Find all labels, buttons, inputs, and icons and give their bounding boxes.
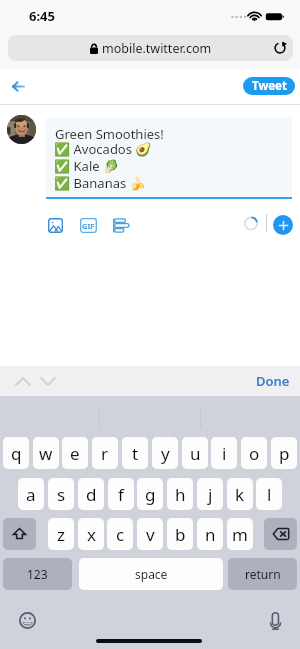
button[interactable]: p — [271, 437, 297, 469]
button[interactable]: s — [48, 478, 74, 510]
button[interactable]: mobile.twitter.com — [8, 35, 293, 61]
button[interactable]: j — [197, 478, 223, 510]
button[interactable]: return — [228, 558, 297, 590]
staticText: f — [118, 483, 124, 506]
staticText: w — [39, 442, 53, 465]
staticText: GIF — [82, 221, 95, 231]
staticText: c — [116, 523, 125, 546]
button[interactable]: r — [92, 437, 118, 469]
staticText: o — [249, 442, 260, 465]
staticText: b — [175, 523, 186, 546]
staticText: p — [279, 442, 290, 465]
staticText: ✅ Avocados 🥑 — [54, 140, 152, 158]
button[interactable]: Previous field — [11, 369, 35, 393]
button[interactable]: a — [18, 478, 44, 510]
button[interactable]: q — [3, 437, 29, 469]
staticText: r — [101, 442, 109, 465]
button[interactable]: v — [137, 518, 163, 550]
button[interactable]: Done — [254, 366, 292, 396]
button[interactable]: 123 — [3, 558, 72, 590]
staticText: j — [208, 483, 213, 506]
staticText: u — [190, 442, 201, 465]
button[interactable]: k — [227, 478, 253, 510]
button[interactable]: Add photo — [42, 212, 68, 238]
staticText: d — [86, 483, 97, 506]
staticText: v — [146, 523, 155, 546]
button[interactable]: h — [167, 478, 193, 510]
staticText: ✅ Bananas 🍌 — [54, 174, 146, 192]
button[interactable]: c — [107, 518, 133, 550]
button[interactable]: g — [137, 478, 163, 510]
button[interactable]: f — [108, 478, 134, 510]
button[interactable]: Back — [4, 72, 32, 100]
staticText: t — [132, 442, 139, 465]
button[interactable]: x — [78, 518, 104, 550]
button[interactable]: Reload page — [267, 35, 293, 61]
button[interactable]: Add poll — [108, 212, 134, 238]
staticText: ✅ Kale 🥬 — [54, 157, 120, 175]
staticText: Green Smoothies! — [55, 125, 164, 143]
button[interactable]: space — [79, 558, 223, 590]
staticText: g — [145, 483, 156, 506]
staticText: Done — [256, 372, 290, 390]
staticText: return — [245, 566, 281, 582]
button[interactable]: l — [256, 478, 282, 510]
staticText: mobile.twitter.com — [102, 40, 212, 57]
staticText: e — [70, 442, 80, 465]
button[interactable]: Add tweet to thread — [273, 215, 293, 235]
button[interactable]: d — [78, 478, 104, 510]
staticText: y — [161, 442, 170, 465]
button[interactable]: n — [197, 518, 223, 550]
button[interactable]: t — [122, 437, 148, 469]
button[interactable]: Add GIF — [75, 212, 101, 238]
staticText: 123 — [27, 566, 48, 582]
staticText: a — [26, 483, 36, 506]
button[interactable]: Emoji keyboard — [19, 612, 36, 629]
button[interactable]: z — [48, 518, 74, 550]
button[interactable]: u — [182, 437, 208, 469]
staticText: h — [175, 483, 186, 506]
staticText: k — [235, 483, 245, 506]
button[interactable]: Next field — [36, 369, 60, 393]
button[interactable]: Dictation — [270, 612, 281, 630]
staticText: Tweet — [252, 78, 287, 94]
staticText: m — [232, 523, 248, 546]
button[interactable]: e — [62, 437, 88, 469]
staticText: s — [57, 483, 66, 506]
staticText: i — [222, 442, 227, 465]
button[interactable]: Backspace — [264, 518, 297, 550]
staticText: z — [57, 523, 65, 546]
button[interactable]: Tweet — [243, 77, 295, 95]
staticText: space — [135, 566, 168, 582]
button[interactable]: w — [33, 437, 59, 469]
button[interactable]: m — [227, 518, 253, 550]
staticText: x — [87, 523, 96, 546]
staticText: q — [11, 442, 22, 465]
button[interactable]: y — [152, 437, 178, 469]
button[interactable]: i — [211, 437, 237, 469]
staticText: n — [205, 523, 216, 546]
button[interactable]: b — [167, 518, 193, 550]
staticText: l — [267, 483, 272, 506]
button[interactable]: Shift — [3, 518, 36, 550]
button[interactable]: o — [241, 437, 267, 469]
staticText: 6:45 — [29, 7, 55, 25]
